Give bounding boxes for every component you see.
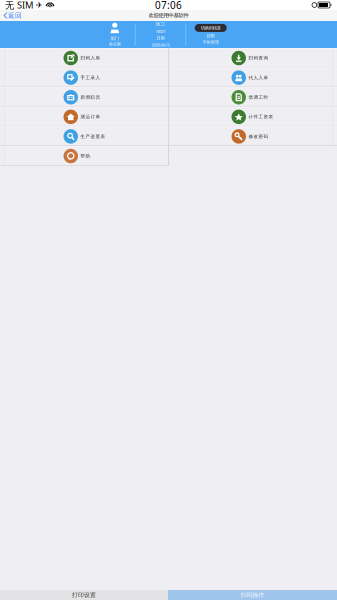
- staticText: 计件工资表: [249, 114, 274, 120]
- staticText: 部门: [111, 36, 119, 41]
- staticText: ✈: [33, 0, 46, 10]
- staticText: 2020-04-15: [151, 42, 169, 48]
- button[interactable]: 返回: [0, 10, 26, 20]
- staticText: 日期: [156, 35, 164, 41]
- staticText: 返回: [8, 11, 22, 20]
- staticText: 代人入单: [249, 75, 269, 80]
- button[interactable]: 新增职员: [0, 87, 168, 107]
- staticText: 扫码查询: [249, 55, 269, 61]
- staticText: 手工录入: [81, 75, 101, 80]
- staticText: 权限: [207, 33, 215, 38]
- staticText: 无 SIM: [5, 0, 33, 11]
- button[interactable]: 生产进度表: [0, 126, 168, 146]
- button[interactable]: 帮助: [0, 146, 168, 166]
- button[interactable]: 修改密码: [168, 126, 337, 146]
- staticText: 切换到核算: [201, 25, 221, 31]
- button[interactable]: 扫码查询: [168, 48, 337, 68]
- staticText: 欢迎使用中基软件: [148, 12, 188, 19]
- staticText: 借调工时: [249, 94, 269, 100]
- staticText: 测运订单: [81, 114, 101, 120]
- staticText: 扫码操作: [240, 591, 264, 599]
- button[interactable]: 手工录入: [0, 68, 168, 87]
- button[interactable]: 测运订单: [0, 107, 168, 126]
- button[interactable]: 计件工资表: [168, 107, 337, 126]
- staticText: 07:06: [155, 0, 182, 12]
- button[interactable]: 切换到核算: [195, 24, 227, 32]
- button[interactable]: 扫码入库: [0, 48, 168, 68]
- staticText: 办公室: [109, 41, 121, 47]
- staticText: 扫码入库: [81, 55, 101, 61]
- button[interactable]: 借调工时: [168, 87, 337, 107]
- staticText: 修改密码: [249, 134, 269, 139]
- staticText: 平时管理: [203, 40, 219, 45]
- staticText: 帮助: [81, 153, 91, 159]
- staticText: 新增职员: [81, 94, 101, 100]
- button[interactable]: 打印设置: [0, 590, 168, 600]
- button[interactable]: 代人入单: [168, 68, 337, 87]
- staticText: 10021: [155, 28, 165, 34]
- button[interactable]: 扫码操作: [168, 590, 337, 600]
- staticText: 打印设置: [72, 591, 96, 599]
- staticText: 生产进度表: [81, 134, 106, 139]
- staticText: 张三: [155, 21, 165, 27]
